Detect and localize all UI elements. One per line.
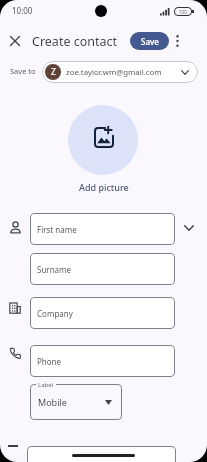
button[interactable]: Company xyxy=(30,297,175,329)
button[interactable]: Save xyxy=(130,32,169,50)
button[interactable]: Phone xyxy=(30,345,175,377)
staticText: Phone xyxy=(37,356,62,367)
staticText: Label xyxy=(38,381,54,389)
button[interactable]: First name xyxy=(30,213,175,245)
staticText: Add picture xyxy=(79,181,129,193)
staticText: First name xyxy=(37,224,77,235)
button[interactable] xyxy=(181,220,197,236)
staticText: 100 xyxy=(179,9,187,15)
button[interactable] xyxy=(6,32,24,50)
staticText: Create contact xyxy=(32,33,118,50)
button[interactable]: Surname xyxy=(30,253,175,285)
staticText: Save xyxy=(141,36,159,47)
button[interactable]: Z xyxy=(42,61,198,83)
button[interactable] xyxy=(171,33,184,49)
staticText: Company xyxy=(37,308,73,319)
staticText: Surname xyxy=(37,264,72,275)
button[interactable] xyxy=(68,105,138,175)
staticText: Save to xyxy=(10,66,36,76)
button[interactable]: Mobile xyxy=(30,384,122,420)
staticText: Z xyxy=(51,66,56,78)
staticText: Mobile xyxy=(38,396,67,408)
staticText: 10:00 xyxy=(12,5,33,16)
staticText: zoe.taylor.wm@gmail.com xyxy=(66,67,162,78)
